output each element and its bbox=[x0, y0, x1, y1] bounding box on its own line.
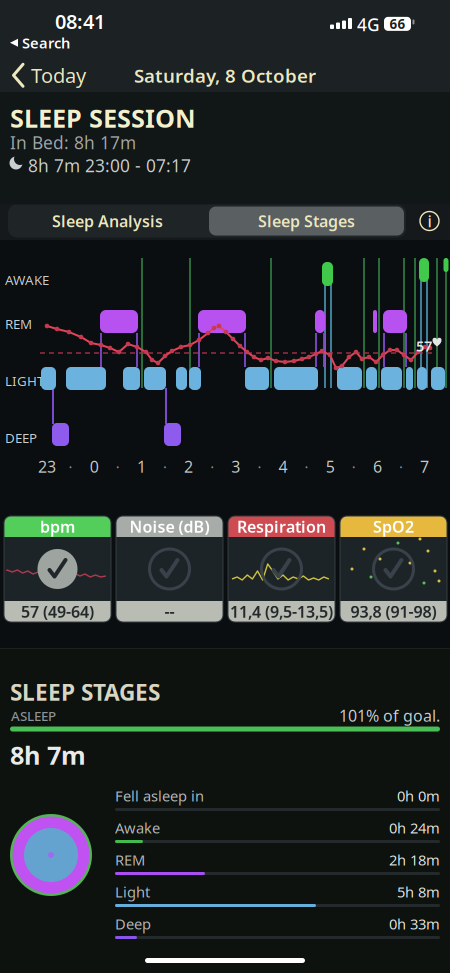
staticText: Search bbox=[22, 33, 70, 52]
staticText: 7 bbox=[420, 456, 429, 477]
staticText: 11,4 (9,5-13,5) bbox=[230, 601, 333, 622]
staticText: · bbox=[257, 457, 261, 476]
staticText: SpO2 bbox=[373, 516, 414, 537]
staticText: 4G bbox=[357, 13, 380, 36]
staticText: Sleep Analysis bbox=[52, 210, 163, 232]
staticText: 57 bbox=[416, 336, 432, 355]
staticText: · bbox=[305, 457, 309, 476]
staticText: LIGHT bbox=[5, 372, 44, 390]
staticText: 2 bbox=[184, 456, 193, 477]
staticText: SLEEP STAGES bbox=[10, 677, 160, 707]
staticText: 8h 7m bbox=[10, 738, 86, 772]
staticText: AWAKE bbox=[5, 271, 49, 289]
button[interactable]: Noise (dB) bbox=[0, 0, 107, 106]
staticText: 3 bbox=[231, 456, 240, 477]
staticText: Noise (dB) bbox=[129, 516, 209, 537]
button[interactable]: Sleep Stages bbox=[0, 0, 195, 29]
button[interactable]: Back to Today bbox=[0, 0, 74, 27]
staticText: 66 bbox=[389, 15, 405, 33]
staticText: 5 bbox=[326, 456, 335, 477]
staticText: 0h 0m bbox=[397, 786, 440, 805]
staticText: 08:41 bbox=[55, 8, 105, 35]
staticText: bpm bbox=[40, 516, 75, 537]
staticText: Deep bbox=[115, 914, 151, 933]
staticText: REM bbox=[115, 850, 145, 869]
staticText: 57 (49-64) bbox=[21, 601, 94, 622]
staticText: · bbox=[116, 457, 120, 476]
staticText: 0h 33m bbox=[389, 914, 440, 933]
staticText: · bbox=[210, 457, 214, 476]
staticText: 4 bbox=[278, 456, 287, 477]
staticText: Saturday, 8 October bbox=[134, 63, 316, 88]
button[interactable]: Respiration bbox=[0, 0, 107, 106]
staticText: 0h 24m bbox=[389, 818, 440, 837]
staticText: · bbox=[352, 457, 356, 476]
button[interactable]: Sleep Analysis bbox=[0, 0, 199, 33]
staticText: In Bed: 8h 17m bbox=[10, 131, 136, 154]
staticText: 93,8 (91-98) bbox=[350, 601, 436, 622]
staticText: 8h 7m 23:00 - 07:17 bbox=[28, 154, 191, 177]
staticText: 5h 8m bbox=[397, 882, 440, 901]
staticText: Light bbox=[115, 882, 150, 901]
staticText: ASLEEP bbox=[11, 707, 56, 725]
staticText: 0 bbox=[90, 456, 99, 477]
staticText: Fell asleep in bbox=[115, 786, 204, 805]
staticText: SLEEP SESSION bbox=[10, 101, 196, 135]
staticText: 23 bbox=[38, 456, 56, 477]
staticText: Respiration bbox=[237, 516, 326, 537]
staticText: Awake bbox=[115, 818, 160, 837]
staticText: · bbox=[69, 457, 73, 476]
staticText: i bbox=[427, 210, 431, 232]
staticText: 6 bbox=[373, 456, 382, 477]
staticText: REM bbox=[5, 315, 32, 333]
button[interactable]: SpO2 bbox=[0, 0, 107, 106]
staticText: 1 bbox=[137, 456, 146, 477]
button[interactable]: Back to Search bbox=[0, 0, 60, 19]
staticText: Today bbox=[31, 62, 86, 89]
staticText: -- bbox=[164, 601, 174, 622]
staticText: 2h 18m bbox=[389, 850, 440, 869]
staticText: Sleep Stages bbox=[258, 210, 355, 232]
staticText: 101% of goal. bbox=[339, 705, 440, 726]
staticText: DEEP bbox=[5, 429, 37, 447]
staticText: · bbox=[163, 457, 167, 476]
button[interactable]: bpm bbox=[0, 0, 107, 106]
staticText: · bbox=[399, 457, 403, 476]
